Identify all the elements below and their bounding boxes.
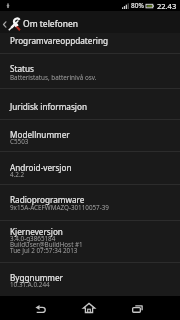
button[interactable]: Programvareoppdatering <box>0 33 180 53</box>
button[interactable]: Android-versjon <box>0 152 180 184</box>
staticText: Status <box>10 63 34 74</box>
staticText: 22.43 <box>157 1 177 11</box>
button[interactable]: Status <box>0 54 180 88</box>
staticText: C5503 <box>10 137 29 146</box>
button[interactable]: Recent apps <box>113 296 161 320</box>
staticText: 80% <box>131 1 144 10</box>
button[interactable]: Radioprogramware <box>0 185 180 220</box>
other: Navigate up <box>2 20 7 29</box>
staticText: Android-versjon <box>10 162 72 173</box>
staticText: Radioprogramware <box>10 194 85 205</box>
staticText: Batteristatus, batterinivå osv. <box>10 73 97 82</box>
staticText: 3.4.0-g3865184 <box>10 234 56 243</box>
staticText: Modellnummer <box>10 129 70 140</box>
button[interactable]: Kjerneversjon <box>0 221 180 262</box>
staticText: Om telefonen <box>23 18 79 30</box>
staticText: Kjerneversjon <box>10 226 63 237</box>
staticText: Byggnummer <box>10 272 63 283</box>
staticText: BuildUser@BuildHost #1 <box>10 240 83 249</box>
staticText: 9x15A-ACEFWMAZQ-30110057-39 <box>10 203 109 212</box>
staticText: Programvareoppdatering <box>10 35 109 46</box>
button[interactable]: Modellnummer <box>0 120 180 151</box>
staticText: 4.2.2 <box>10 170 25 179</box>
button[interactable]: Back <box>17 296 65 320</box>
staticText: 10.31.A.0.244 <box>10 280 50 289</box>
button[interactable]: Juridisk informasjon <box>0 89 180 119</box>
staticText: Juridisk informasjon <box>10 101 87 112</box>
button[interactable]: Home <box>65 296 113 320</box>
button[interactable]: Navigate up <box>0 11 180 33</box>
button[interactable]: Byggnummer <box>0 263 180 296</box>
staticText: Tue Jul 2 07:57:34 2013 <box>10 246 78 255</box>
